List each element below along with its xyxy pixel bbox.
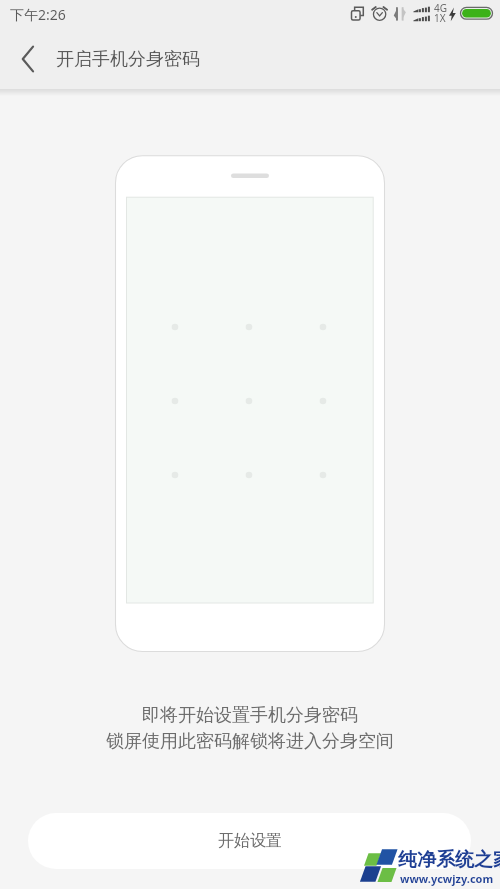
staticText: 4G xyxy=(434,1,447,15)
staticText: 下午2:26 xyxy=(10,5,66,24)
staticText: 开启手机分身密码 xyxy=(56,48,200,71)
staticText: www.ycwjzy.com xyxy=(400,871,494,886)
staticText: 即将开始设置手机分身密码 锁屏使用此密码解锁将进入分身空间 xyxy=(0,704,500,752)
button[interactable]: 开始设置 xyxy=(28,813,471,869)
staticText: 1X xyxy=(434,11,446,25)
staticText: 纯净系统之家 xyxy=(398,848,500,872)
staticText: 开始设置 xyxy=(218,831,282,851)
button[interactable]: Back xyxy=(10,41,46,77)
